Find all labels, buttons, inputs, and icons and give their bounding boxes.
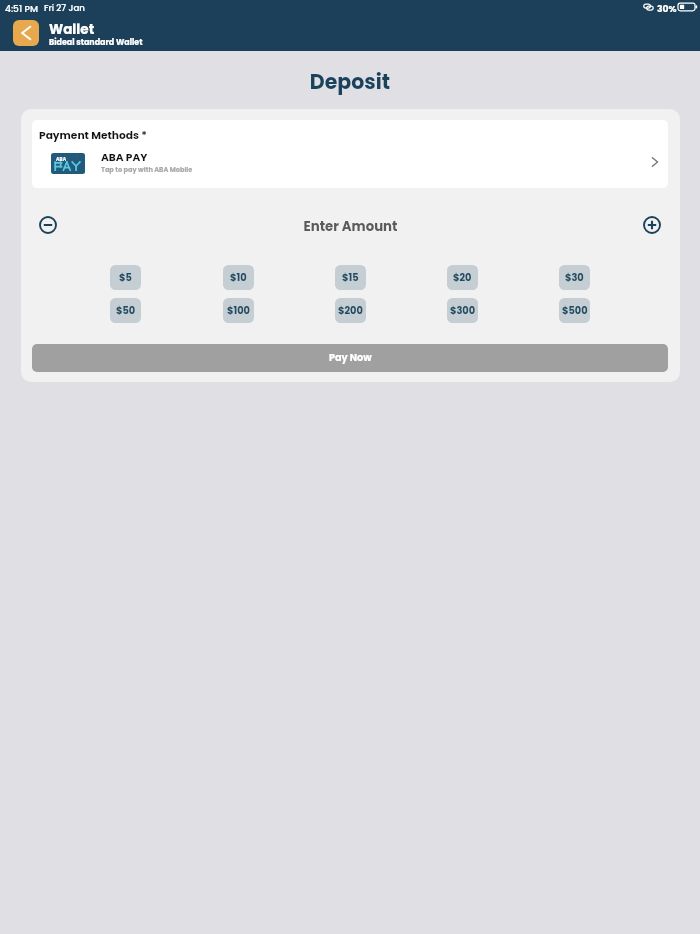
staticText: $5 <box>119 271 132 285</box>
button[interactable]: Back <box>13 20 39 46</box>
staticText: Fri 27 Jan <box>44 2 85 14</box>
staticText: $10 <box>230 271 247 285</box>
staticText: Pay Now <box>329 351 372 365</box>
button[interactable]: $5 <box>110 265 141 290</box>
staticText: Wallet <box>49 20 95 39</box>
staticText: 30% <box>657 2 677 15</box>
staticText: $300 <box>450 304 476 318</box>
button[interactable]: $200 <box>335 298 366 323</box>
staticText: ABA <box>56 156 67 162</box>
button[interactable]: $10 <box>223 265 254 290</box>
staticText: $100 <box>227 304 250 318</box>
button[interactable]: $300 <box>447 298 478 323</box>
staticText: Payment Methods * <box>39 128 147 143</box>
button[interactable]: $15 <box>335 265 366 290</box>
staticText: $200 <box>338 304 363 318</box>
staticText: Bideal standard Wallet <box>49 37 143 48</box>
staticText: $30 <box>565 271 584 285</box>
button[interactable]: Increase amount <box>641 214 663 236</box>
staticText: ABA PAY <box>101 150 148 165</box>
staticText: $50 <box>116 304 136 318</box>
button[interactable]: Pay Now <box>32 344 668 372</box>
button[interactable]: $20 <box>447 265 478 290</box>
staticText: $15 <box>342 271 359 285</box>
staticText: $500 <box>562 304 588 318</box>
staticText: Tap to pay with ABA Mobile <box>101 165 193 174</box>
staticText: $20 <box>453 271 472 285</box>
button[interactable]: ABA <box>32 146 668 180</box>
button[interactable]: $500 <box>559 298 590 323</box>
staticText: 4:51 PM <box>5 2 38 15</box>
button[interactable]: $50 <box>110 298 141 323</box>
staticText: Deposit <box>0 67 700 96</box>
button[interactable]: $30 <box>559 265 590 290</box>
button[interactable]: $100 <box>223 298 254 323</box>
button[interactable]: Decrease amount <box>37 214 59 236</box>
staticText: Enter Amount <box>21 217 680 236</box>
